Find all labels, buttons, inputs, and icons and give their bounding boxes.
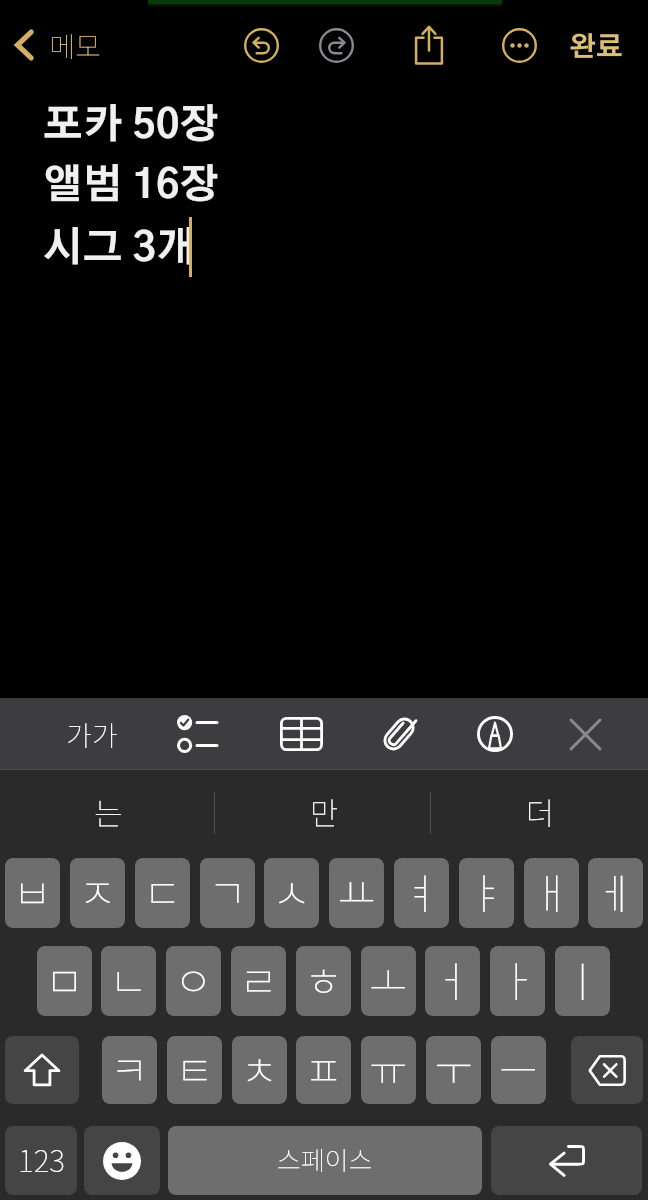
button[interactable]: ㅈ: [70, 858, 125, 928]
staticText: 시그 3개: [43, 229, 196, 269]
button[interactable]: ㅛ: [329, 858, 384, 928]
button[interactable]: Backspace: [571, 1036, 643, 1104]
button[interactable]: Return: [491, 1126, 642, 1195]
button[interactable]: Attach: [363, 698, 435, 770]
staticText: ㅈ: [78, 860, 117, 921]
staticText: 123: [18, 1137, 65, 1180]
button[interactable]: More: [495, 21, 543, 69]
button[interactable]: ㅌ: [167, 1036, 222, 1104]
button[interactable]: 만: [216, 770, 432, 856]
staticText: ㅓ: [433, 948, 472, 1009]
button[interactable]: Undo: [237, 21, 285, 69]
button[interactable]: Close: [549, 698, 621, 770]
button[interactable]: 더: [432, 770, 648, 856]
staticText: ㅅ: [272, 860, 311, 921]
staticText: ㅏ: [498, 948, 537, 1009]
button[interactable]: ㅋ: [102, 1036, 157, 1104]
button[interactable]: 스페이스: [168, 1126, 482, 1195]
staticText: ㅑ: [467, 860, 506, 921]
button[interactable]: ㅡ: [491, 1036, 546, 1104]
staticText: ㅁ: [45, 948, 84, 1009]
staticText: 완료: [569, 34, 623, 61]
staticText: ㄴ: [109, 948, 148, 1009]
staticText: ㄹ: [239, 948, 278, 1009]
button[interactable]: 는: [0, 770, 216, 856]
button[interactable]: ㅁ: [37, 946, 92, 1016]
button[interactable]: Table: [265, 698, 337, 770]
staticText: ㄱ: [208, 860, 247, 921]
staticText: 메모: [49, 25, 101, 66]
staticText: 포카 50장: [43, 106, 220, 146]
button[interactable]: ㅠ: [361, 1036, 416, 1104]
staticText: ㅂ: [13, 860, 52, 921]
staticText: ㅔ: [596, 860, 635, 921]
button[interactable]: ㅜ: [426, 1036, 481, 1104]
staticText: ㅡ: [499, 1037, 538, 1098]
button[interactable]: ㅓ: [425, 946, 480, 1016]
staticText: 스페이스: [277, 1140, 373, 1178]
button[interactable]: Markup: [459, 698, 531, 770]
button[interactable]: 가가: [48, 698, 136, 770]
button[interactable]: ㅐ: [524, 858, 579, 928]
button[interactable]: 메모: [0, 15, 111, 75]
staticText: ㅐ: [532, 860, 571, 921]
staticText: ㅎ: [304, 948, 343, 1009]
button[interactable]: ㅂ: [5, 858, 60, 928]
staticText: 앨범 16장: [43, 166, 220, 206]
staticText: 가가: [66, 714, 118, 755]
staticText: 더: [526, 789, 555, 834]
staticText: ㅕ: [402, 860, 441, 921]
staticText: ㅇ: [174, 948, 213, 1009]
staticText: ㅋ: [110, 1037, 149, 1098]
button[interactable]: ㄷ: [135, 858, 190, 928]
button[interactable]: ㅑ: [459, 858, 514, 928]
staticText: ㅠ: [369, 1037, 408, 1098]
staticText: ㄷ: [143, 860, 182, 921]
staticText: ㅣ: [563, 948, 602, 1009]
button[interactable]: Checklist: [161, 698, 233, 770]
staticText: 만: [310, 789, 339, 834]
button[interactable]: Share: [405, 21, 453, 69]
button[interactable]: 123: [5, 1126, 77, 1195]
staticText: ㅜ: [434, 1037, 473, 1098]
staticText: 는: [94, 789, 123, 834]
button[interactable]: ㅣ: [555, 946, 610, 1016]
button[interactable]: Emoji: [84, 1126, 160, 1195]
staticText: ㅍ: [304, 1037, 343, 1098]
button[interactable]: ㅗ: [361, 946, 416, 1016]
button[interactable]: ㄴ: [101, 946, 156, 1016]
button[interactable]: ㅊ: [232, 1036, 287, 1104]
staticText: ㅊ: [240, 1037, 279, 1098]
button[interactable]: Redo: [312, 21, 360, 69]
button[interactable]: Shift: [5, 1036, 79, 1104]
button[interactable]: ㅏ: [490, 946, 545, 1016]
button[interactable]: ㅕ: [394, 858, 449, 928]
button[interactable]: ㅅ: [264, 858, 319, 928]
button[interactable]: ㅍ: [296, 1036, 351, 1104]
button[interactable]: ㅇ: [166, 946, 221, 1016]
staticText: ㅌ: [175, 1037, 214, 1098]
staticText: ㅗ: [369, 948, 408, 1009]
button[interactable]: ㄱ: [200, 858, 255, 928]
staticText: ㅛ: [337, 860, 376, 921]
button[interactable]: ㄹ: [231, 946, 286, 1016]
button[interactable]: ㅔ: [588, 858, 643, 928]
button[interactable]: 완료: [556, 17, 636, 77]
button[interactable]: ㅎ: [296, 946, 351, 1016]
